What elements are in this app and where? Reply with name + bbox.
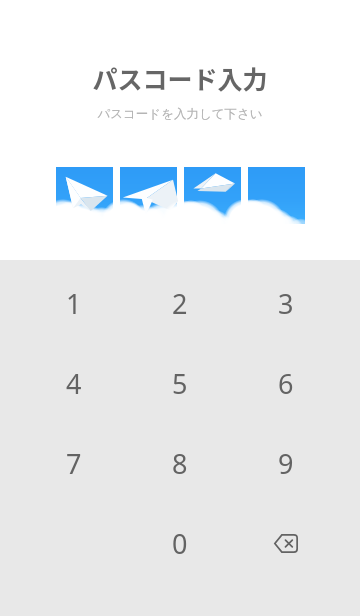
other: Passcode digit 4 empty (248, 167, 305, 224)
button[interactable]: 6 (233, 343, 339, 423)
staticText: 3 (278, 285, 294, 322)
button[interactable]: 2 (127, 263, 233, 343)
staticText: パスコード入力 (92, 60, 268, 96)
button[interactable]: 0 (127, 503, 233, 583)
staticText: 2 (172, 285, 188, 322)
staticText: 9 (278, 445, 294, 482)
staticText: 1 (66, 285, 82, 322)
staticText: 8 (172, 445, 188, 482)
staticText: パスコードを入力して下さい (97, 106, 263, 122)
button[interactable]: 5 (127, 343, 233, 423)
button[interactable]: 4 (21, 343, 127, 423)
other: Passcode digit 3 entered (184, 167, 241, 224)
other: Passcode digit 1 entered (56, 167, 113, 224)
other: Passcode digit 2 entered (120, 167, 177, 224)
staticText: 4 (66, 365, 82, 402)
staticText: 6 (278, 365, 294, 402)
staticText: 0 (172, 525, 188, 562)
staticText: 7 (66, 445, 82, 482)
staticText: 5 (172, 365, 188, 402)
button[interactable]: 3 (233, 263, 339, 343)
button[interactable]: 9 (233, 423, 339, 503)
button[interactable]: Delete last digit (233, 503, 339, 583)
button[interactable]: 1 (21, 263, 127, 343)
button[interactable]: 7 (21, 423, 127, 503)
button[interactable]: 8 (127, 423, 233, 503)
